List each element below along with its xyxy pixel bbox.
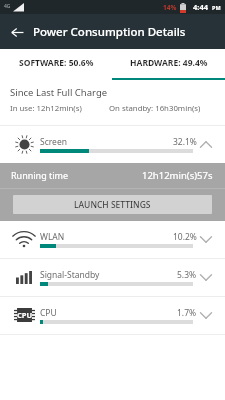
other: Collapse <box>198 136 214 152</box>
staticText: Screen <box>40 136 67 148</box>
staticText: 14% <box>163 3 177 12</box>
other: Expand <box>198 269 214 285</box>
staticText: Since Last Full Charge <box>10 86 108 99</box>
button[interactable]: SOFTWARE: 50.6% <box>0 49 112 78</box>
other: Expand <box>198 231 214 247</box>
staticText: In use: 12h12min(s) <box>10 103 82 114</box>
staticText: HARDWARE: 49.4% <box>130 57 208 69</box>
button[interactable]: HARDWARE: 49.4% <box>112 49 225 78</box>
staticText: WLAN <box>40 231 65 243</box>
staticText: 32.1% <box>173 136 197 148</box>
staticText: 5.3% <box>177 269 197 281</box>
button[interactable]: CPU <box>0 297 225 334</box>
button[interactable]: Screen <box>0 126 225 163</box>
staticText: 4G <box>4 3 11 10</box>
staticText: PM <box>212 4 221 11</box>
button[interactable]: WLAN <box>0 221 225 258</box>
staticText: CPU <box>17 310 33 320</box>
staticText: Signal-Standby <box>40 269 100 281</box>
button[interactable]: Back <box>5 20 29 44</box>
staticText: CPU <box>40 307 57 319</box>
staticText: 1.7% <box>177 307 197 319</box>
staticText: 10.2% <box>173 231 197 243</box>
staticText: On standby: 16h30min(s) <box>109 103 201 114</box>
staticText: LAUNCH SETTINGS <box>74 199 151 211</box>
button[interactable]: LAUNCH SETTINGS <box>13 195 212 214</box>
staticText: SOFTWARE: 50.6% <box>19 57 94 69</box>
other: Expand <box>198 307 214 323</box>
button[interactable]: Signal-Standby <box>0 259 225 296</box>
staticText: 4:44 <box>193 2 208 12</box>
staticText: Running time <box>11 169 69 181</box>
staticText: 12h12min(s)57s <box>142 169 213 182</box>
staticText: Power Consumption Details <box>33 24 186 40</box>
